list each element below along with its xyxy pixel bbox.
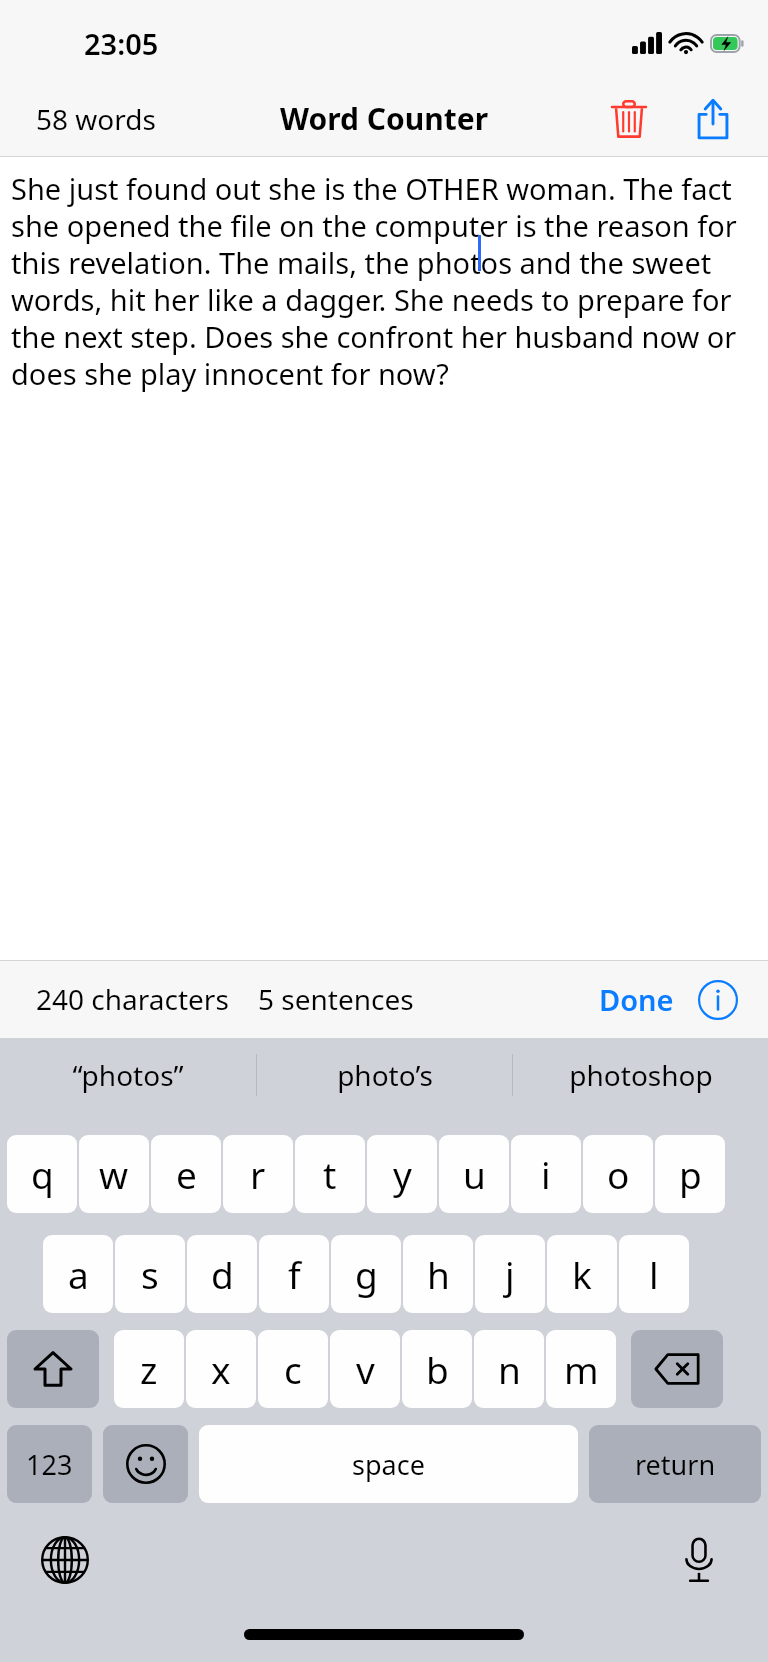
button[interactable]: x: [186, 1330, 256, 1408]
staticText: “photos”: [72, 1056, 184, 1094]
staticText: r: [250, 1149, 266, 1199]
staticText: 240 characters: [36, 980, 229, 1018]
button[interactable]: k: [547, 1235, 617, 1313]
button[interactable]: Delete: [598, 88, 660, 150]
button[interactable]: m: [546, 1330, 616, 1408]
button[interactable]: 123: [7, 1425, 92, 1503]
staticText: photo’s: [337, 1056, 433, 1094]
staticText: photoshop: [569, 1056, 713, 1094]
staticText: i: [541, 1149, 551, 1199]
button[interactable]: u: [439, 1135, 509, 1213]
staticText: a: [68, 1249, 89, 1299]
button[interactable]: Info: [694, 976, 742, 1024]
button[interactable]: c: [258, 1330, 328, 1408]
button[interactable]: return: [589, 1425, 761, 1503]
button[interactable]: j: [475, 1235, 545, 1313]
button[interactable]: e: [151, 1135, 221, 1213]
button[interactable]: t: [295, 1135, 365, 1213]
staticText: x: [211, 1344, 231, 1394]
staticText: t: [323, 1149, 337, 1199]
button[interactable]: w: [79, 1135, 149, 1213]
staticText: She just found out she is the OTHER woma…: [11, 169, 757, 394]
staticText: k: [572, 1249, 592, 1299]
button[interactable]: d: [187, 1235, 257, 1313]
staticText: g: [355, 1249, 378, 1299]
staticText: h: [427, 1249, 450, 1299]
staticText: n: [498, 1344, 521, 1394]
button[interactable]: photo’s: [257, 1038, 512, 1112]
staticText: l: [649, 1249, 659, 1299]
button[interactable]: Backspace: [631, 1330, 723, 1408]
button[interactable]: a: [43, 1235, 113, 1313]
staticText: c: [284, 1344, 302, 1394]
button[interactable]: q: [7, 1135, 77, 1213]
button[interactable]: v: [330, 1330, 400, 1408]
button[interactable]: photoshop: [513, 1038, 768, 1112]
button[interactable]: i: [511, 1135, 581, 1213]
button[interactable]: b: [402, 1330, 472, 1408]
button[interactable]: “photos”: [0, 1038, 256, 1112]
button[interactable]: Change keyboard: [30, 1525, 100, 1595]
button[interactable]: r: [223, 1135, 293, 1213]
button[interactable]: space: [199, 1425, 578, 1503]
staticText: w: [99, 1149, 129, 1199]
button[interactable]: p: [655, 1135, 725, 1213]
button[interactable]: o: [583, 1135, 653, 1213]
staticText: y: [393, 1149, 412, 1199]
staticText: d: [211, 1249, 234, 1299]
staticText: 23:05: [84, 24, 159, 63]
button[interactable]: s: [115, 1235, 185, 1313]
staticText: q: [31, 1149, 54, 1199]
staticText: p: [679, 1149, 702, 1199]
staticText: j: [505, 1249, 515, 1299]
staticText: v: [356, 1344, 375, 1394]
staticText: z: [140, 1344, 158, 1394]
button[interactable]: h: [403, 1235, 473, 1313]
staticText: Done: [599, 980, 674, 1019]
staticText: return: [635, 1446, 716, 1483]
button[interactable]: g: [331, 1235, 401, 1313]
staticText: b: [426, 1344, 449, 1394]
staticText: o: [607, 1149, 630, 1199]
staticText: m: [564, 1344, 599, 1394]
button[interactable]: z: [114, 1330, 184, 1408]
staticText: Word Counter: [280, 98, 489, 139]
button[interactable]: n: [474, 1330, 544, 1408]
staticText: 58 words: [36, 100, 156, 138]
button[interactable]: y: [367, 1135, 437, 1213]
staticText: e: [176, 1149, 197, 1199]
staticText: s: [141, 1249, 159, 1299]
staticText: f: [288, 1249, 301, 1299]
staticText: 123: [26, 1446, 73, 1483]
button[interactable]: Emoji: [103, 1425, 188, 1503]
staticText: space: [352, 1446, 425, 1483]
button[interactable]: f: [259, 1235, 329, 1313]
staticText: 5 sentences: [258, 980, 414, 1018]
button[interactable]: Dictate: [664, 1525, 734, 1595]
button[interactable]: l: [619, 1235, 689, 1313]
button[interactable]: Share: [682, 88, 744, 150]
button[interactable]: Shift: [7, 1330, 99, 1408]
staticText: u: [463, 1149, 486, 1199]
button[interactable]: Done: [593, 972, 680, 1027]
